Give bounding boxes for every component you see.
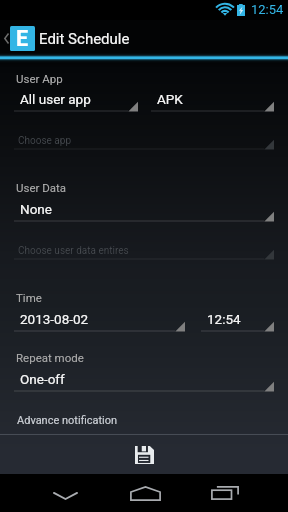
button[interactable]: Home bbox=[121, 474, 169, 512]
staticText: None bbox=[20, 201, 52, 217]
button[interactable]: Recents bbox=[201, 474, 249, 512]
button[interactable]: 2013-08-02 bbox=[14, 307, 185, 333]
staticText: Choose user data entires bbox=[18, 245, 129, 257]
button[interactable]: None bbox=[14, 197, 274, 223]
button[interactable]: Save bbox=[117, 436, 171, 473]
staticText: 2013-08-02 bbox=[20, 311, 89, 327]
staticText: E bbox=[16, 26, 29, 51]
staticText: User App bbox=[16, 72, 63, 85]
button[interactable]: E bbox=[0, 20, 288, 56]
button[interactable]: Advance notification bbox=[0, 404, 288, 434]
button[interactable]: Choose user data entires bbox=[14, 235, 274, 261]
staticText: All user app bbox=[20, 91, 91, 107]
button[interactable]: Choose app bbox=[14, 125, 274, 151]
staticText: One-off bbox=[20, 371, 65, 387]
staticText: User Data bbox=[16, 181, 67, 194]
button[interactable]: One-off bbox=[14, 367, 274, 393]
button[interactable]: 12:54 bbox=[201, 307, 274, 333]
button[interactable]: Back bbox=[41, 474, 89, 512]
staticText: 12:54 bbox=[251, 2, 284, 17]
staticText: APK bbox=[157, 91, 183, 107]
staticText: Advance notification bbox=[17, 414, 118, 427]
staticText: 12:54 bbox=[207, 311, 241, 327]
button[interactable]: All user app bbox=[14, 87, 138, 113]
button[interactable]: APK bbox=[151, 87, 274, 113]
staticText: Time bbox=[16, 291, 42, 304]
staticText: Repeat mode bbox=[16, 351, 84, 364]
staticText: Choose app bbox=[18, 135, 72, 147]
staticText: Edit Schedule bbox=[39, 30, 130, 48]
